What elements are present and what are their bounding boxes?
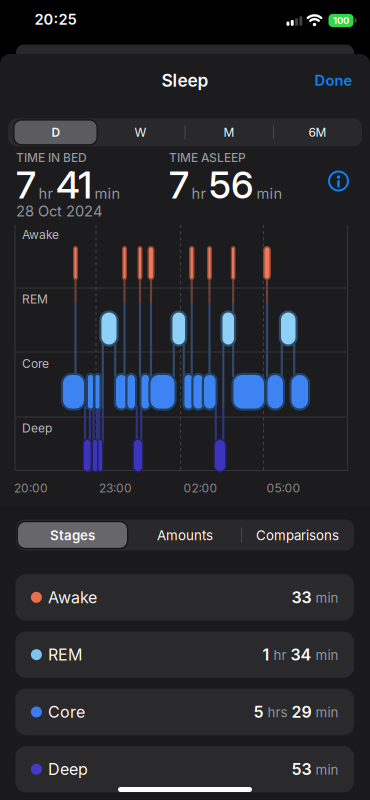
staticText: min <box>256 185 282 202</box>
staticText: Deep <box>48 760 88 779</box>
button[interactable]: Awake <box>15 574 354 620</box>
staticText: Sleep <box>161 70 208 91</box>
staticText: REM <box>48 645 82 664</box>
staticText: Core <box>22 356 49 371</box>
button[interactable]: 6M <box>273 118 361 146</box>
staticText: hr <box>38 185 53 202</box>
staticText: min <box>315 705 338 720</box>
staticText: 02:00 <box>183 481 217 495</box>
staticText: 7 <box>169 163 189 207</box>
staticText: M <box>223 125 234 139</box>
staticText: hrs <box>267 705 287 720</box>
staticText: W <box>134 125 146 139</box>
button[interactable]: Done <box>314 72 352 89</box>
staticText: Awake <box>48 588 97 607</box>
staticText: Core <box>48 702 85 721</box>
staticText: 28 Oct 2024 <box>16 202 102 220</box>
button[interactable]: D <box>12 118 100 146</box>
staticText: 20:00 <box>14 481 48 495</box>
staticText: 6M <box>308 125 326 139</box>
staticText: 56 <box>209 163 254 207</box>
button[interactable]: W <box>96 118 184 146</box>
staticText: 7 <box>16 163 36 207</box>
staticText: Awake <box>22 227 59 242</box>
button[interactable]: Stages <box>16 520 128 551</box>
staticText: 5 <box>253 702 263 721</box>
staticText: 20:25 <box>34 11 76 28</box>
staticText: 53 <box>291 760 311 779</box>
staticText: D <box>51 125 60 139</box>
staticText: Amounts <box>157 527 213 543</box>
button[interactable]: REM <box>15 631 354 678</box>
button[interactable]: M <box>185 118 273 146</box>
staticText: min <box>315 762 338 778</box>
staticText: min <box>94 185 120 202</box>
staticText: 29 <box>291 702 311 721</box>
staticText: REM <box>22 292 48 306</box>
staticText: min <box>315 590 338 606</box>
staticText: 100 <box>333 15 349 26</box>
staticText: Done <box>314 72 352 89</box>
staticText: 33 <box>291 588 311 607</box>
staticText: 41 <box>56 163 92 207</box>
staticText: 05:00 <box>266 481 300 495</box>
staticText: hr <box>191 185 206 202</box>
staticText: 23:00 <box>99 481 132 495</box>
button[interactable]: Amounts <box>129 520 241 551</box>
staticText: 1 <box>262 645 269 664</box>
button[interactable]: Core <box>15 689 354 735</box>
staticText: Comparisons <box>256 527 339 543</box>
button[interactable]: Comparisons <box>241 520 353 551</box>
staticText: Stages <box>50 527 95 543</box>
staticText: hr <box>273 647 286 663</box>
staticText: TIME IN BED <box>16 150 87 165</box>
staticText: min <box>315 647 338 663</box>
staticText: TIME ASLEEP <box>169 150 246 165</box>
staticText: 34 <box>290 645 311 664</box>
staticText: Deep <box>22 421 52 435</box>
button[interactable]: Deep <box>15 746 354 792</box>
button[interactable]: Info <box>329 171 348 190</box>
